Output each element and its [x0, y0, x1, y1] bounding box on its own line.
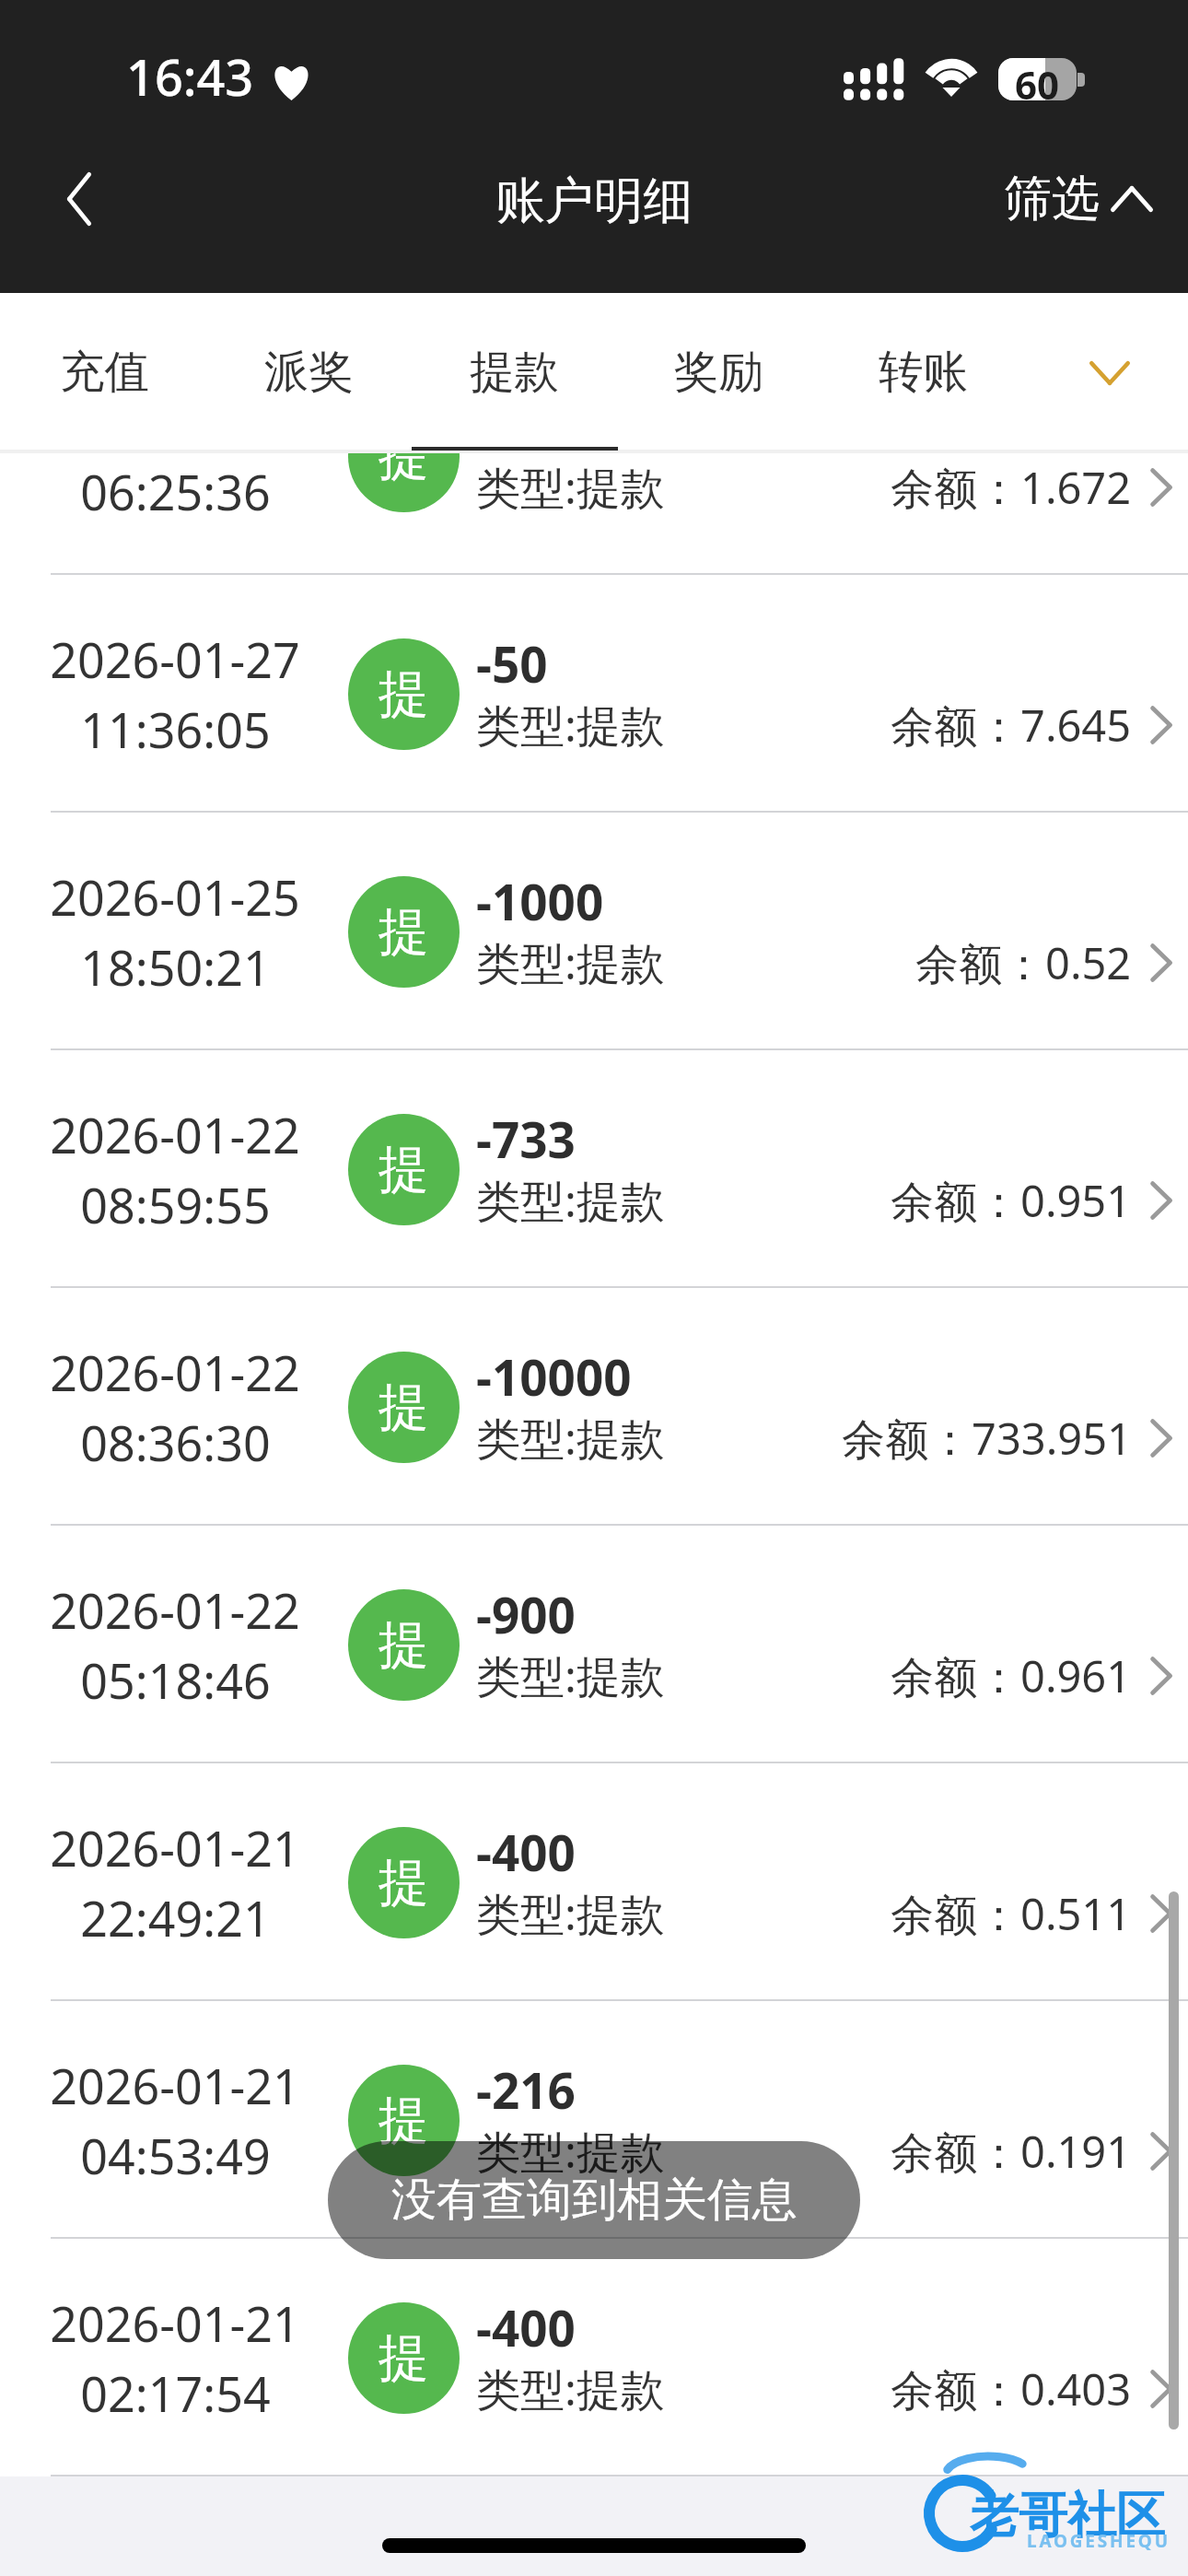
- button[interactable]: 2026-01-22: [0, 1288, 1188, 1526]
- button[interactable]: 2026-01-21: [0, 2239, 1188, 2476]
- staticText: 02:17:54: [80, 2360, 271, 2426]
- staticText: 2026-01-27: [50, 626, 300, 692]
- staticText: 余额：733.951: [842, 1409, 1132, 1468]
- staticText: 类型:提款: [476, 2121, 665, 2182]
- staticText: 提: [379, 2089, 429, 2152]
- button[interactable]: 2026-01-25: [0, 813, 1188, 1050]
- button[interactable]: 提款: [422, 293, 606, 453]
- button[interactable]: 2026-01-22: [0, 1050, 1188, 1288]
- staticText: 05:18:46: [80, 1647, 271, 1713]
- button[interactable]: Expand tabs: [1041, 293, 1179, 453]
- staticText: 2026-01-25: [50, 864, 300, 930]
- staticText: 2026-01-22: [50, 1577, 300, 1643]
- button[interactable]: 2026-01-22: [0, 1526, 1188, 1763]
- staticText: 04:53:49: [80, 2123, 271, 2188]
- staticText: 余额：1.672: [891, 458, 1132, 517]
- staticText: -733: [476, 1106, 576, 1172]
- staticText: 余额：0.403: [891, 2359, 1132, 2418]
- button[interactable]: 充值: [12, 293, 196, 453]
- staticText: 类型:提款: [476, 1408, 665, 1469]
- staticText: 2026-01-21: [50, 2053, 300, 2118]
- button[interactable]: 奖励: [626, 293, 810, 453]
- staticText: 账户明细: [495, 170, 693, 231]
- staticText: 类型:提款: [476, 1170, 665, 1231]
- staticText: 转账: [879, 344, 968, 400]
- staticText: 余额：0.961: [891, 1646, 1132, 1705]
- staticText: -50: [476, 630, 548, 697]
- staticText: 60: [1015, 58, 1060, 100]
- staticText: 余额：0.52: [915, 933, 1132, 992]
- staticText: 类型:提款: [476, 457, 665, 518]
- button[interactable]: 2026-01-21: [0, 1763, 1188, 2001]
- staticText: 筛选: [1004, 169, 1100, 229]
- staticText: 派奖: [264, 344, 354, 400]
- staticText: 余额：0.191: [891, 2122, 1132, 2181]
- staticText: 类型:提款: [476, 1645, 665, 1706]
- staticText: 提: [379, 453, 429, 488]
- staticText: LAOGESHEQU: [1027, 2529, 1171, 2553]
- staticText: 06:25:36: [80, 459, 271, 524]
- staticText: 提: [379, 2326, 429, 2390]
- staticText: 08:59:55: [80, 1172, 271, 1237]
- staticText: -1000: [476, 868, 604, 934]
- staticText: 余额：7.645: [891, 696, 1132, 755]
- staticText: 提: [379, 1138, 429, 1201]
- staticText: 余额：0.511: [891, 1884, 1132, 1943]
- button[interactable]: Back: [0, 138, 158, 260]
- staticText: 提: [379, 662, 429, 726]
- button[interactable]: 筛选: [976, 138, 1188, 260]
- staticText: 充值: [60, 344, 149, 400]
- button[interactable]: 2026-01-27: [0, 575, 1188, 813]
- staticText: 2026-01-22: [50, 1102, 300, 1167]
- staticText: -900: [476, 1581, 576, 1647]
- staticText: 2026-01-21: [50, 1815, 300, 1880]
- staticText: 类型:提款: [476, 2359, 665, 2419]
- staticText: 16:43: [126, 42, 254, 111]
- staticText: 类型:提款: [476, 695, 665, 755]
- staticText: 提: [379, 1376, 429, 1439]
- staticText: 类型:提款: [476, 932, 665, 993]
- staticText: 奖励: [674, 344, 763, 400]
- staticText: 2026-01-21: [50, 2290, 300, 2356]
- staticText: 提: [379, 1613, 429, 1677]
- button[interactable]: 2026-01-28: [0, 453, 1188, 575]
- staticText: 没有查询到相关信息: [391, 2172, 798, 2229]
- staticText: 提: [379, 900, 429, 964]
- staticText: 18:50:21: [80, 934, 271, 1000]
- staticText: 2026-01-22: [50, 1340, 300, 1405]
- staticText: 老哥社区: [970, 2485, 1165, 2547]
- staticText: 11:36:05: [80, 697, 271, 762]
- staticText: 提款: [470, 344, 559, 400]
- button[interactable]: 派奖: [216, 293, 401, 453]
- button[interactable]: 转账: [831, 293, 1015, 453]
- staticText: -216: [476, 2056, 576, 2123]
- staticText: -400: [476, 2294, 576, 2360]
- staticText: -10000: [476, 1343, 632, 1410]
- button[interactable]: 2026-01-21: [0, 2001, 1188, 2239]
- staticText: -330: [476, 453, 576, 459]
- staticText: 08:36:30: [80, 1410, 271, 1475]
- staticText: 22:49:21: [80, 1885, 271, 1950]
- staticText: -400: [476, 1819, 576, 1885]
- staticText: 余额：0.951: [891, 1171, 1132, 1230]
- staticText: 类型:提款: [476, 1883, 665, 1944]
- staticText: 提: [379, 1851, 429, 1914]
